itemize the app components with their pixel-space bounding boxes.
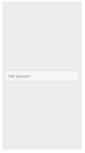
button[interactable]: Enter password <box>5 71 79 81</box>
staticText: Enter password <box>8 73 30 79</box>
